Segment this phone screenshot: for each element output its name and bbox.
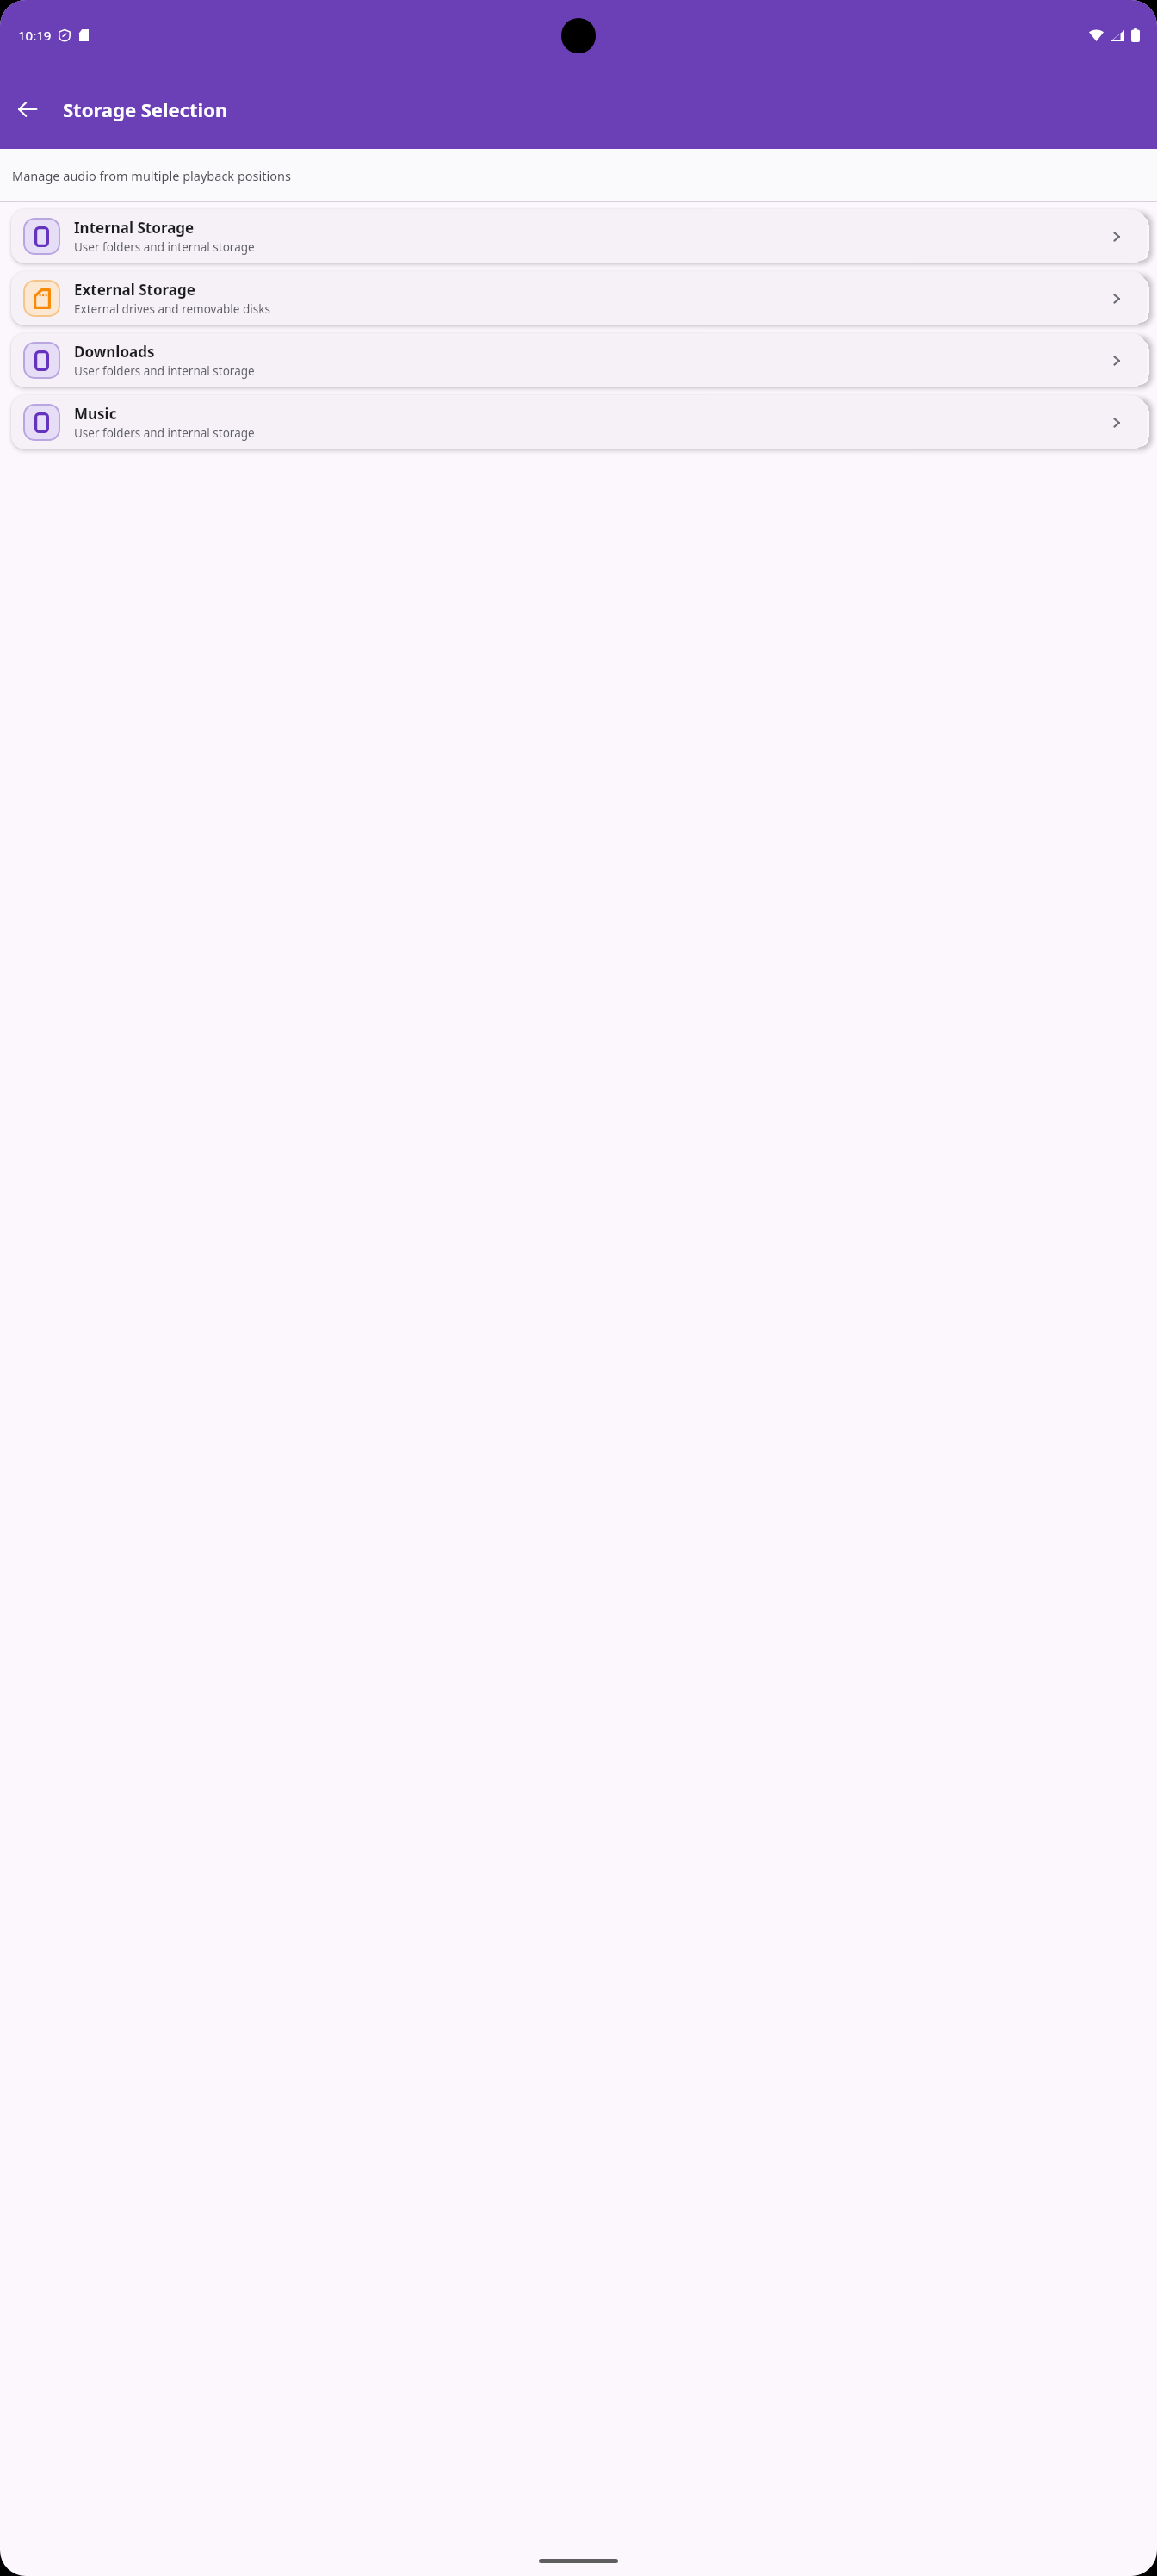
staticText: Downloads — [74, 342, 155, 362]
button[interactable]: Music — [11, 395, 1146, 449]
staticText: User folders and internal storage — [74, 425, 255, 441]
button[interactable]: Downloads — [11, 333, 1146, 387]
staticText: External drives and removable disks — [74, 301, 270, 317]
staticText: User folders and internal storage — [74, 239, 255, 255]
button[interactable]: External Storage — [11, 271, 1146, 325]
staticText: Manage audio from multiple playback posi… — [12, 167, 291, 184]
staticText: Storage Selection — [63, 96, 228, 122]
staticText: Music — [74, 404, 117, 424]
button[interactable]: Internal Storage — [11, 209, 1146, 263]
staticText: Internal Storage — [74, 218, 195, 238]
staticText: User folders and internal storage — [74, 363, 255, 379]
staticText: External Storage — [74, 280, 195, 300]
staticText: 10:19 — [18, 27, 52, 44]
button[interactable]: Back — [7, 89, 48, 130]
